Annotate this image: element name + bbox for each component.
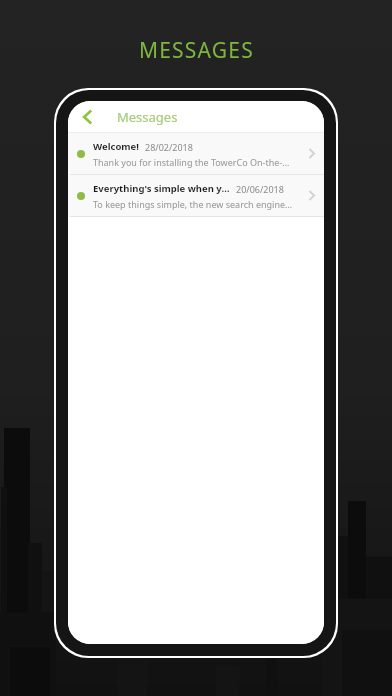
staticText: MESSAGES (139, 36, 254, 65)
staticText: 28/02/2018 (145, 141, 193, 153)
button[interactable]: Everything's simple when y… (68, 175, 324, 216)
staticText: Everything's simple when y… (93, 182, 230, 195)
button[interactable]: Welcome! (68, 133, 324, 174)
staticText: 20/06/2018 (236, 183, 284, 195)
staticText: To keep things simple, the new search en… (93, 198, 294, 210)
staticText: Thank you for installing the TowerCo On-… (93, 156, 294, 168)
staticText: Messages (117, 108, 178, 126)
staticText: Welcome! (93, 140, 139, 153)
button[interactable]: Back (68, 101, 108, 132)
